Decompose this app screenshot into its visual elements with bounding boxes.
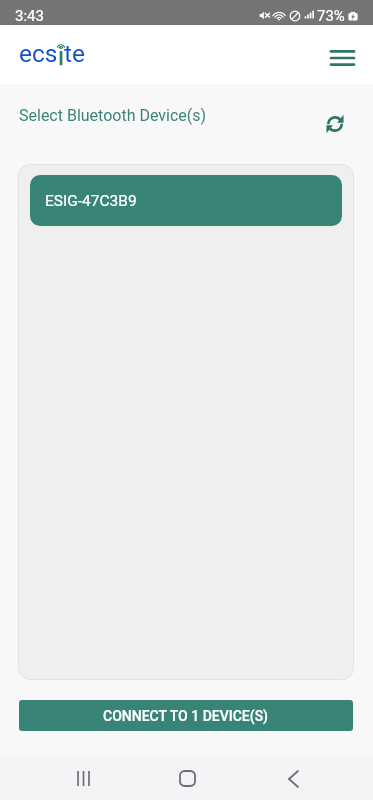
button[interactable]: Refresh — [319, 108, 350, 139]
button[interactable]: ESIG-47C3B9 — [30, 175, 342, 226]
button[interactable]: Menu — [321, 37, 363, 79]
staticText: ESIG-47C3B9 — [45, 192, 137, 210]
staticText: ecs — [19, 39, 58, 68]
staticText: CONNECT TO 1 DEVICE(S) — [103, 708, 269, 724]
button[interactable]: Recents — [61, 757, 105, 800]
staticText: 73% — [317, 7, 345, 25]
button[interactable]: Back — [271, 757, 315, 800]
button[interactable]: CONNECT TO 1 DEVICE(S) — [19, 700, 353, 731]
button[interactable]: Home — [165, 757, 209, 800]
staticText: te — [64, 39, 86, 68]
staticText: 3:43 — [15, 7, 44, 25]
staticText: Select Bluetooth Device(s) — [19, 106, 207, 125]
